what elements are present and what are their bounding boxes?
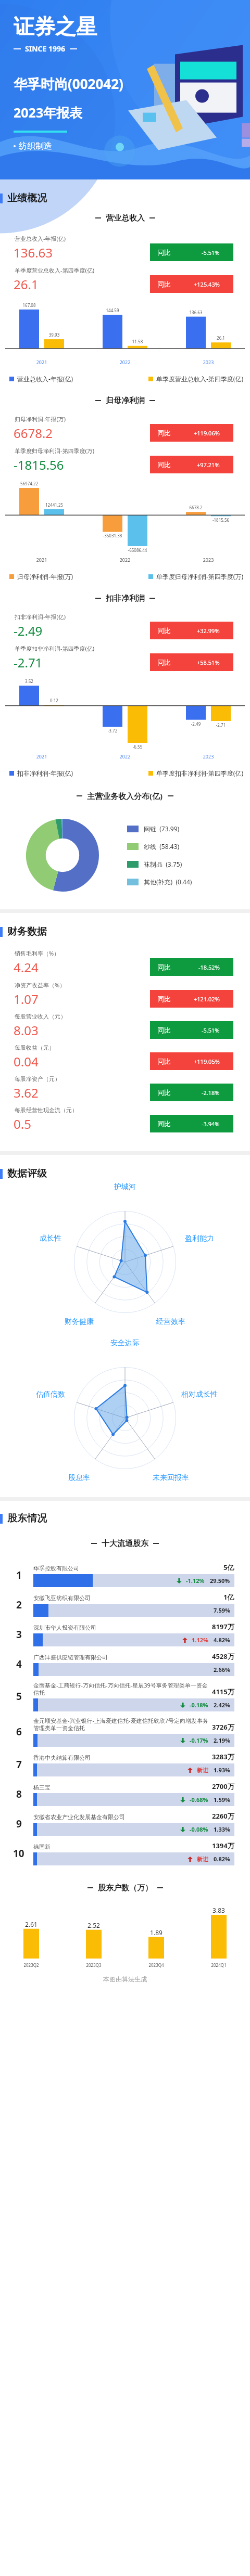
button[interactable]: 4 [4,1652,234,1676]
staticText: 华孚时尚(002042) [14,74,123,93]
button[interactable]: 同比 [150,653,233,671]
staticText: -3.94% [202,1120,220,1128]
staticText: 167.08 [13,302,45,308]
button[interactable]: 2 [4,1592,234,1617]
staticText: 同比 [157,1057,171,1065]
staticText: 同比 [157,658,171,666]
button[interactable]: 股东情况 [0,1508,250,1529]
staticText: 2.66% [214,1666,230,1673]
button[interactable]: 5 [4,1681,234,1711]
button[interactable]: 10 [4,1841,234,1865]
staticText: 同比 [157,626,171,635]
staticText: 股息率 [51,1473,108,1483]
staticText: 1.89 [125,1928,187,1937]
staticText: -35031.38 [96,533,129,538]
staticText: 本图由算法生成 [0,1975,250,1983]
staticText: 6678.2 [14,424,53,442]
staticText: 同比 [157,460,171,469]
staticText: 5 [16,1690,22,1703]
staticText: -18.52% [198,963,220,971]
staticText: 徐国新 [33,1843,209,1850]
staticText: 2023 [167,557,250,563]
staticText: 新进 [197,1767,208,1774]
staticText: 经营效率 [142,1317,199,1326]
staticText: 扣非净利润 [106,594,145,603]
button[interactable]: 同比 [150,275,233,293]
staticText: -0.08% [190,1825,208,1833]
staticText: 纱线 (58.43) [144,842,180,851]
button[interactable]: 8 [4,1782,234,1806]
staticText: -2.71 [205,722,237,728]
staticText: -5.51% [202,1026,220,1034]
staticText: 3 [16,1628,22,1641]
button[interactable]: 同比 [150,424,233,442]
staticText: 护城河 [96,1182,154,1192]
staticText: 1.59% [214,1796,230,1804]
staticText: -1815.56 [205,517,237,523]
staticText: -0.68% [190,1796,208,1804]
staticText: 2023年报表 [14,104,83,121]
staticText: 2023Q3 [63,1962,125,1968]
staticText: 2022 [83,753,167,759]
button[interactable]: 同比 [150,1052,233,1070]
button[interactable]: 6 [4,1717,234,1747]
staticText: 同比 [157,995,171,1003]
staticText: 0.12 [38,698,70,703]
staticText: 扣非净利润-年报(亿) [17,769,73,777]
staticText: 2023Q4 [125,1962,187,1968]
staticText: 证券之星 [14,14,97,40]
staticText: 华孚控股有限公司 [33,1565,220,1572]
button[interactable]: 3 [4,1622,234,1646]
staticText: -2.18% [202,1089,220,1097]
staticText: 单季度扣非净利润-第四季度(亿) [156,769,244,777]
staticText: 净资产收益率（%） [15,981,66,989]
staticText: 144.59 [96,307,129,313]
staticText: 1.33% [214,1825,230,1833]
staticText: 2.61 [0,1920,63,1928]
staticText: 香港中央结算有限公司 [33,1754,209,1761]
staticText: 金元顺安基金-兴业银行-上海爱建信托-爱建信托欣欣7号定向增发事务管理类单一资金… [33,1717,209,1732]
button[interactable]: 数据评级 [0,1163,250,1184]
staticText: 0.82% [214,1855,230,1863]
staticText: 12441.25 [38,502,70,508]
staticText: 每股经营性现金流（元） [15,1106,78,1114]
staticText: -2.49 [14,622,43,639]
staticText: 3.52 [13,678,45,684]
staticText: 每股净资产（元） [15,1075,60,1083]
button[interactable]: 同比 [150,622,233,639]
staticText: 财务数据 [7,925,47,938]
staticText: SINCE 1996 [25,44,66,54]
staticText: 8.03 [14,1022,39,1039]
staticText: 4.82% [214,1636,230,1644]
staticText: 营业总收入-年报(亿) [15,235,66,242]
staticText: 8 [16,1787,22,1801]
button[interactable]: 同比 [150,990,233,1008]
staticText: +119.05% [194,1058,220,1065]
button[interactable]: 同比 [150,456,233,473]
button[interactable]: 同比 [150,243,233,261]
staticText: 归母净利润-年报(万) [15,415,66,423]
button[interactable]: 1 [4,1563,234,1587]
staticText: 股东情况 [7,1512,47,1525]
staticText: 2022 [83,359,167,365]
button[interactable]: 同比 [150,1084,233,1101]
staticText: 同比 [157,1119,171,1128]
button[interactable]: 同比 [150,1021,233,1039]
staticText: -1.12% [186,1577,205,1585]
button[interactable]: 7 [4,1752,234,1776]
staticText: 同比 [157,280,171,288]
staticText: 136.63 [14,244,53,261]
button[interactable]: 业绩概况 [0,188,250,209]
staticText: 数据评级 [7,1167,47,1180]
button[interactable]: 9 [4,1811,234,1836]
staticText: 1394万 [212,1841,234,1850]
button[interactable]: 同比 [150,1115,233,1132]
staticText: 未来回报率 [142,1473,199,1483]
staticText: 5亿 [223,1563,234,1572]
staticText: 杨三宝 [33,1784,209,1791]
button[interactable]: 同比 [150,958,233,976]
staticText: 安徽省农业产业化发展基金有限公司 [33,1813,209,1821]
button[interactable]: 财务数据 [0,921,250,942]
staticText: 2260万 [212,1811,234,1821]
staticText: 3726万 [212,1722,234,1732]
